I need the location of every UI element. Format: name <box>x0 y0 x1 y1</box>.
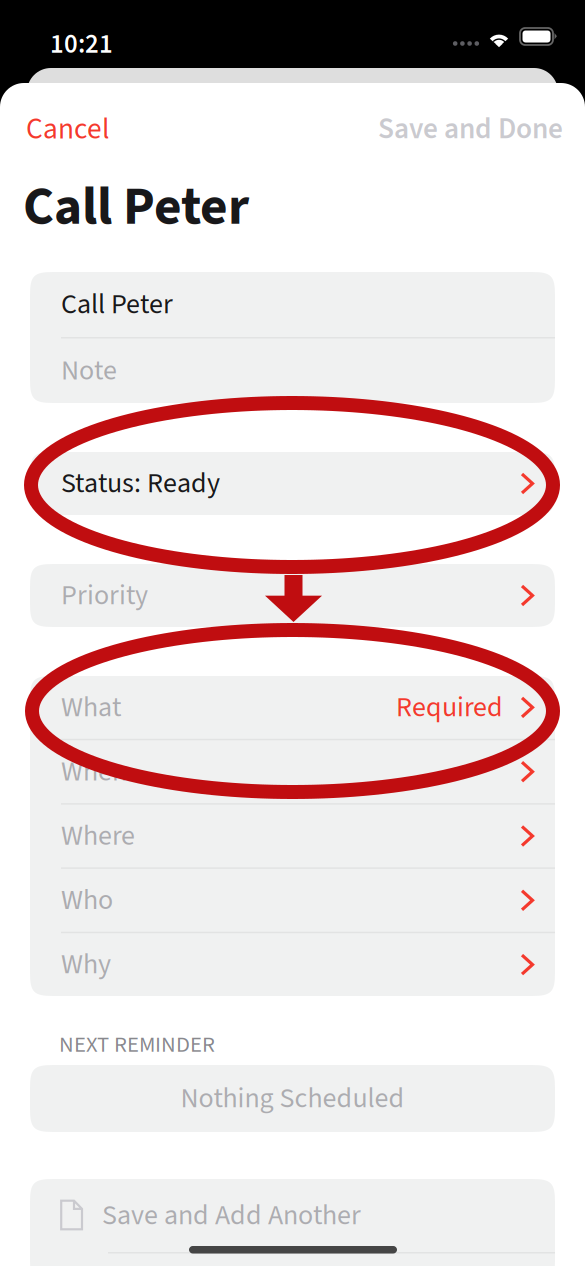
staticText: Nothing Scheduled <box>180 1079 404 1118</box>
button[interactable]: Who <box>30 869 555 932</box>
button[interactable]: Where <box>30 805 555 867</box>
staticText: Where <box>61 817 135 855</box>
button[interactable]: When <box>30 740 555 803</box>
staticText: Save and Done <box>378 109 563 149</box>
button[interactable]: Status: Ready <box>30 452 555 515</box>
button[interactable]: Save and Add Another <box>30 1179 555 1252</box>
staticText: Who <box>61 881 113 920</box>
button[interactable]: Priority <box>30 564 555 627</box>
button[interactable]: What <box>30 676 555 739</box>
staticText: When <box>61 752 127 791</box>
button[interactable]: Why <box>30 933 555 996</box>
staticText: Status: Ready <box>61 464 220 503</box>
staticText: Why <box>61 945 111 984</box>
staticText: NEXT REMINDER <box>59 1029 215 1060</box>
staticText: Note <box>61 351 117 390</box>
staticText: Call Peter <box>23 170 249 244</box>
staticText: Call Peter <box>61 285 173 324</box>
staticText: What <box>61 688 121 727</box>
button[interactable]: Cancel <box>0 96 125 163</box>
button[interactable]: Call Peter <box>30 272 555 337</box>
staticText: Required <box>396 688 503 727</box>
staticText: Cancel <box>26 109 109 150</box>
button[interactable]: Save and Done <box>362 96 585 162</box>
button[interactable]: Note <box>30 338 555 403</box>
staticText: 10:21 <box>50 26 113 63</box>
staticText: Save and Add Another <box>102 1196 361 1235</box>
staticText: Priority <box>61 576 148 615</box>
